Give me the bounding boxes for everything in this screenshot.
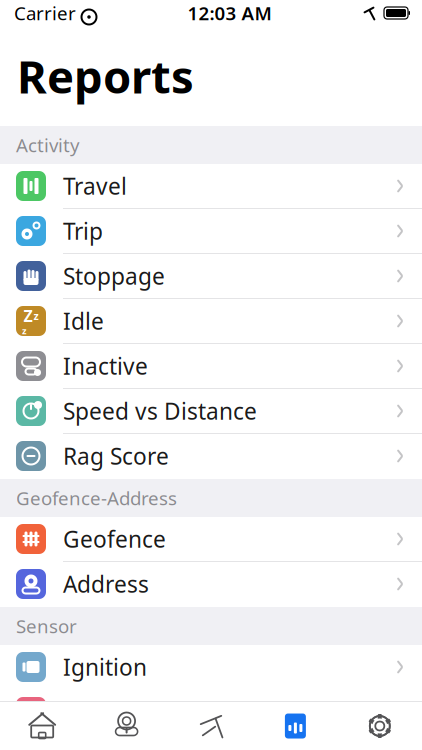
button[interactable]: Stoppage xyxy=(0,254,422,299)
staticText: z xyxy=(33,309,38,323)
staticText: z xyxy=(22,324,27,337)
staticText: Sensor xyxy=(16,614,77,638)
staticText: Inactive xyxy=(63,351,148,381)
staticText: Rag Score xyxy=(63,441,169,471)
button[interactable]: Geofence xyxy=(0,517,422,562)
staticText: Idle xyxy=(63,306,104,336)
staticText: Carrier xyxy=(14,1,76,25)
staticText: Stoppage xyxy=(63,261,165,291)
button[interactable]: Ignition xyxy=(0,645,422,690)
button[interactable]: Live Track xyxy=(169,702,253,750)
staticText: Z xyxy=(23,305,32,326)
staticText: Speed vs Distance xyxy=(63,396,257,426)
button[interactable]: Home xyxy=(0,702,84,750)
staticText: Travel xyxy=(63,171,127,201)
button[interactable]: Settings xyxy=(338,702,422,750)
button[interactable]: Rag Score xyxy=(0,434,422,479)
button[interactable]: Address xyxy=(0,562,422,607)
button[interactable]: Fuel xyxy=(0,690,422,735)
staticText: Activity xyxy=(16,133,80,157)
staticText: Reports xyxy=(17,46,194,106)
button[interactable]: Places xyxy=(84,702,169,750)
staticText: Geofence xyxy=(63,524,166,554)
button[interactable]: Speed vs Distance xyxy=(0,389,422,434)
staticText: Geofence-Address xyxy=(16,486,177,510)
staticText: Trip xyxy=(63,216,103,246)
button[interactable]: Inactive xyxy=(0,344,422,389)
staticText: Ignition xyxy=(63,652,147,682)
button[interactable]: Reports xyxy=(253,702,338,750)
staticText: Fuel xyxy=(63,697,108,727)
button[interactable]: Trip xyxy=(0,209,422,254)
button[interactable]: Z xyxy=(0,299,422,344)
staticText: 12:03 AM xyxy=(187,1,271,25)
staticText: Address xyxy=(63,569,149,599)
button[interactable]: Travel xyxy=(0,164,422,209)
